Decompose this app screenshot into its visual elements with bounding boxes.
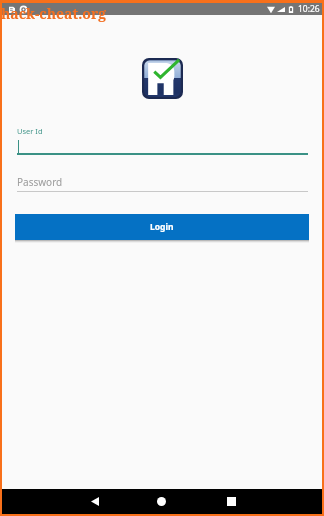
- button[interactable]: Recent apps: [216, 489, 246, 514]
- staticText: 10:26: [298, 3, 320, 15]
- button[interactable]: Back: [80, 489, 110, 514]
- button[interactable]: Login: [15, 214, 309, 240]
- staticText: hack-cheat.org: [1, 4, 107, 23]
- button[interactable]: Home: [146, 489, 176, 514]
- staticText: User Id: [17, 126, 43, 136]
- staticText: Login: [150, 221, 174, 233]
- staticText: Password: [17, 175, 63, 189]
